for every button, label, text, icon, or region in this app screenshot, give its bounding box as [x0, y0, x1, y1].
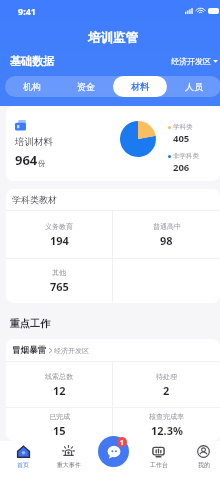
staticText: 1 — [120, 438, 124, 447]
staticText: 基础数据 — [10, 54, 54, 68]
staticText: 206 — [173, 161, 190, 174]
staticText: 核查完成率 — [149, 412, 184, 421]
staticText: 964 — [15, 151, 38, 169]
button[interactable]: 线索总数 — [6, 362, 112, 407]
button[interactable]: 其他 — [6, 259, 112, 303]
staticText: 线索总数 — [45, 372, 73, 381]
staticText: 765 — [50, 279, 69, 294]
button[interactable]: 核查完成率 — [113, 408, 220, 441]
button[interactable]: 待处理 — [113, 362, 220, 407]
staticText: 义务教育 — [45, 222, 73, 231]
staticText: 学科类 — [173, 123, 193, 131]
staticText: 194 — [50, 233, 69, 248]
button[interactable]: 消息 — [98, 436, 129, 467]
staticText: 材料 — [131, 81, 149, 92]
button[interactable]: 普通高中 — [113, 211, 220, 258]
staticText: 2 — [163, 383, 170, 398]
staticText: 12 — [53, 383, 66, 398]
staticText: 学科类教材 — [12, 194, 57, 205]
button[interactable]: 工作台 — [136, 441, 181, 485]
button[interactable]: 机构 — [5, 76, 59, 97]
staticText: 培训监管 — [88, 30, 138, 46]
button[interactable]: 培训材料 — [6, 106, 220, 181]
staticText: 其他 — [52, 268, 66, 277]
staticText: 9:41 — [18, 5, 36, 17]
button[interactable]: 重大事件 — [46, 441, 91, 485]
staticText: 98 — [160, 233, 173, 248]
button[interactable]: 我的 — [181, 441, 220, 485]
button[interactable]: 材料 — [113, 76, 167, 97]
staticText: 12.3% — [151, 423, 183, 438]
staticText: 冒烟暴雷 — [12, 345, 46, 356]
staticText: 已完成 — [49, 412, 70, 421]
button[interactable]: 资金 — [59, 76, 113, 97]
staticText: 资金 — [77, 81, 95, 92]
button[interactable]: 人员 — [167, 76, 220, 97]
staticText: 我的 — [198, 461, 210, 469]
staticText: 普通高中 — [153, 222, 181, 231]
staticText: 非学科类 — [173, 152, 199, 160]
staticText: 份 — [38, 159, 46, 168]
staticText: 培训材料 — [15, 136, 53, 148]
staticText: 工作台 — [150, 461, 168, 469]
staticText: 机构 — [23, 81, 41, 92]
staticText: 首页 — [17, 461, 29, 469]
staticText: 经济开发区 — [171, 56, 211, 66]
button[interactable]: 已完成 — [6, 408, 112, 441]
staticText: 15 — [53, 423, 66, 438]
staticText: 人员 — [185, 81, 203, 92]
staticText: 待处理 — [156, 372, 177, 381]
button[interactable]: 首页 — [0, 441, 46, 485]
staticText: 405 — [173, 132, 190, 145]
staticText: 重点工作 — [10, 317, 50, 330]
button[interactable]: 经济开发区 — [171, 56, 218, 66]
staticText: 重大事件 — [57, 461, 81, 469]
button[interactable]: 义务教育 — [6, 211, 112, 258]
staticText: 经济开发区 — [54, 346, 89, 355]
